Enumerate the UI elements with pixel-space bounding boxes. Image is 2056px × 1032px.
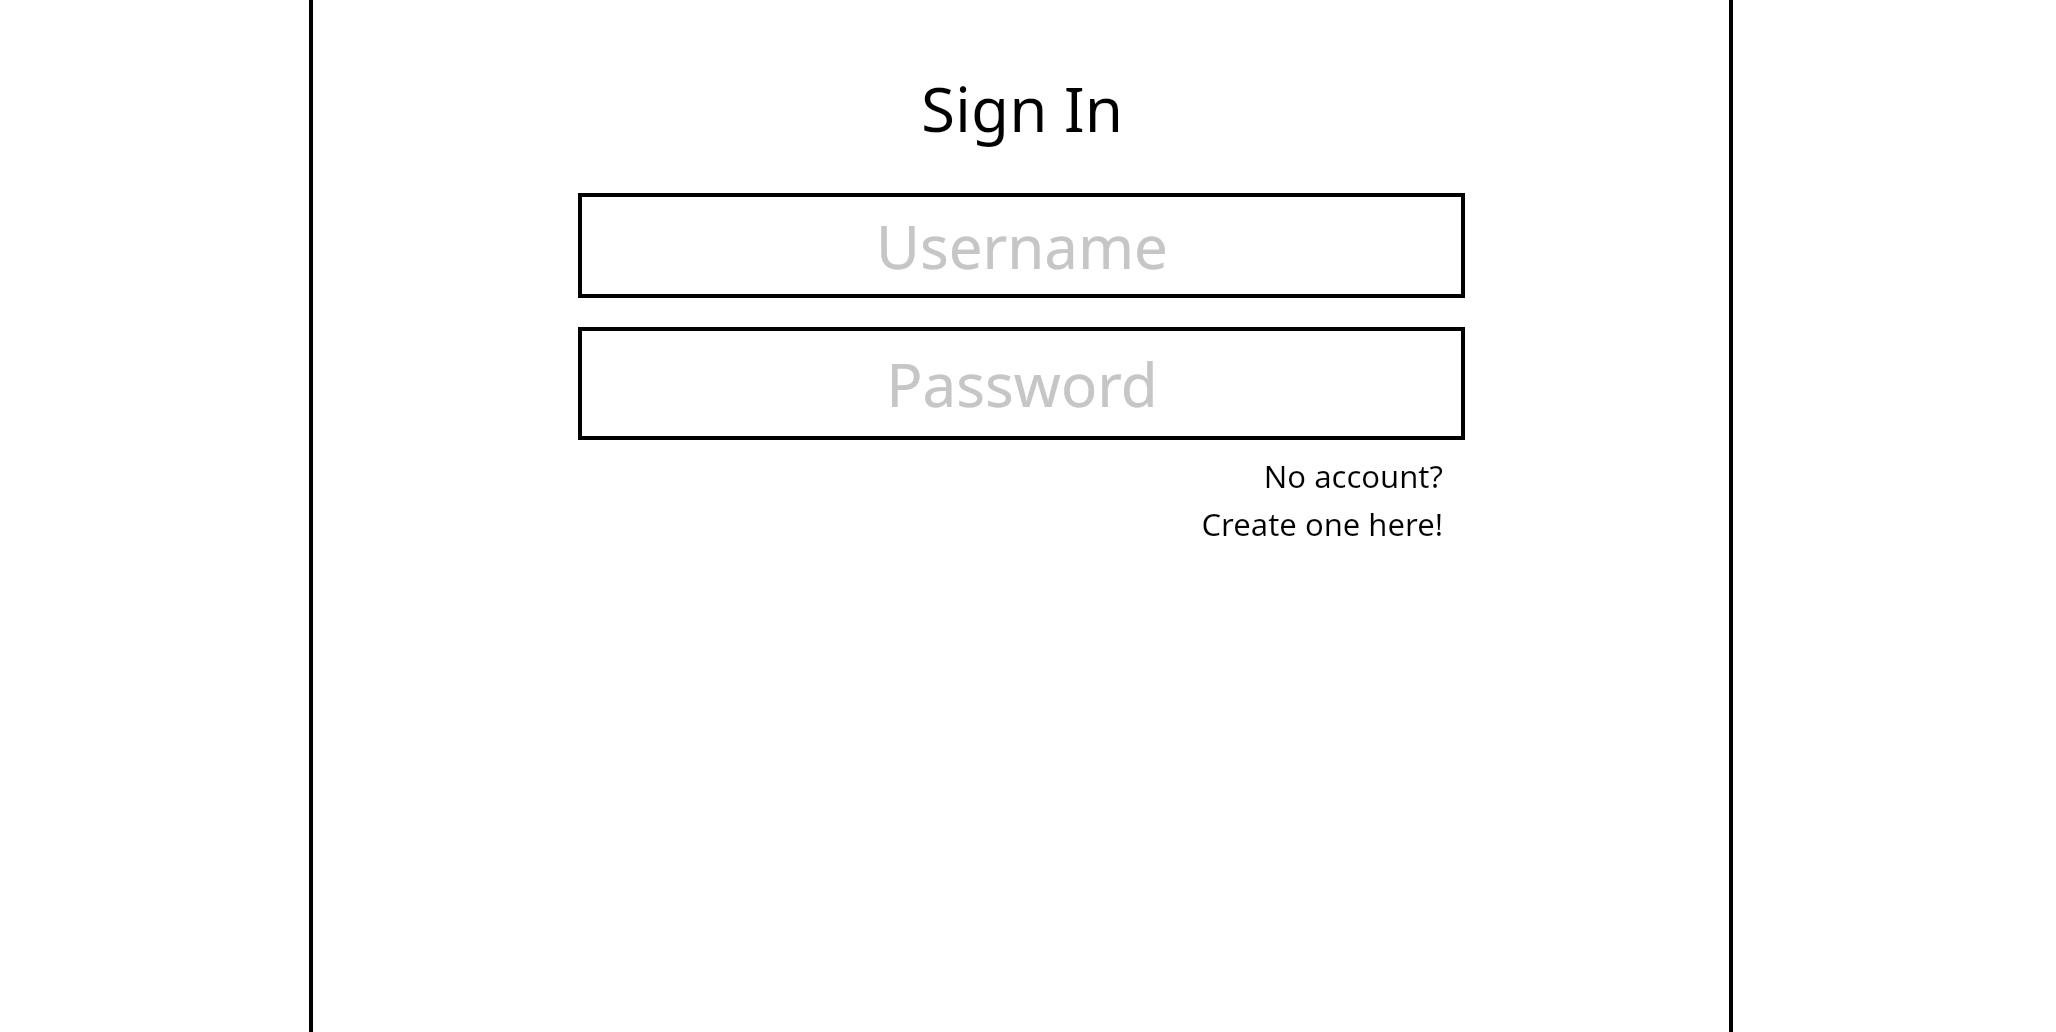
staticText: No account?	[1263, 455, 1443, 497]
staticText: Sign In	[921, 66, 1123, 150]
staticText: Password	[886, 343, 1158, 425]
button[interactable]: Username	[578, 193, 1465, 298]
staticText: Create one here!	[1201, 503, 1443, 545]
button[interactable]: No account? Create one here!	[1143, 455, 1443, 545]
button[interactable]: Password	[578, 327, 1465, 440]
staticText: Username	[876, 205, 1168, 287]
